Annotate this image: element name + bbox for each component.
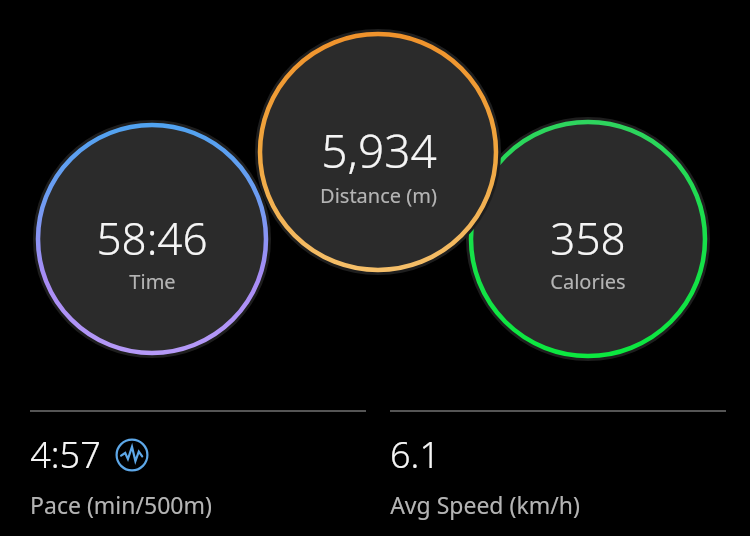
staticText: 4:57 — [30, 430, 101, 479]
button[interactable]: 358 — [466, 117, 710, 361]
staticText: 358 — [550, 208, 626, 268]
staticText: Time — [129, 268, 176, 295]
staticText: Avg Speed (km/h) — [390, 489, 580, 520]
other: Heart rate — [115, 438, 149, 472]
button[interactable]: 5,934 — [255, 29, 501, 275]
staticText: 5,934 — [321, 119, 437, 182]
button[interactable]: 6.1 — [390, 410, 726, 492]
staticText: 6.1 — [390, 430, 440, 479]
staticText: Distance (m) — [320, 182, 437, 209]
button[interactable]: 58:46 — [33, 120, 271, 358]
staticText: 58:46 — [96, 208, 208, 268]
staticText: Pace (min/500m) — [30, 489, 212, 520]
button[interactable]: 4:57 — [30, 410, 366, 492]
staticText: Calories — [550, 268, 626, 295]
